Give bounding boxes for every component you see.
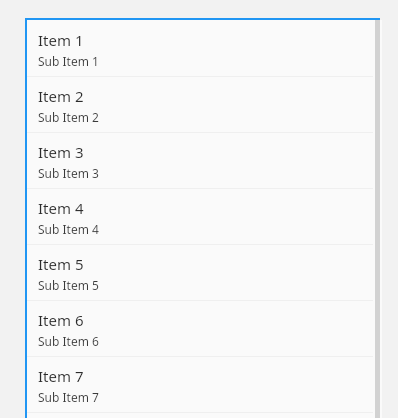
staticText: Item 6 [38, 310, 84, 330]
staticText: Sub Item 1 [38, 53, 99, 69]
staticText: Item 1 [38, 30, 84, 50]
button[interactable]: Item 3 [27, 133, 373, 189]
staticText: Item 5 [38, 254, 84, 274]
staticText: Item 3 [38, 142, 84, 162]
staticText: Sub Item 2 [38, 109, 99, 125]
staticText: Sub Item 3 [38, 165, 99, 181]
button[interactable]: Item 7 [27, 357, 373, 413]
button[interactable]: Item 2 [27, 77, 373, 133]
button[interactable]: Item 1 [27, 21, 373, 77]
staticText: Item 4 [38, 198, 84, 218]
button[interactable]: Item 6 [27, 301, 373, 357]
staticText: Item 7 [38, 366, 84, 386]
button[interactable]: Item 5 [27, 245, 373, 301]
staticText: Sub Item 4 [38, 221, 99, 237]
staticText: Sub Item 6 [38, 333, 99, 349]
button[interactable]: Item 4 [27, 189, 373, 245]
staticText: Sub Item 7 [38, 389, 99, 405]
staticText: Sub Item 5 [38, 277, 99, 293]
staticText: Item 2 [38, 86, 84, 106]
